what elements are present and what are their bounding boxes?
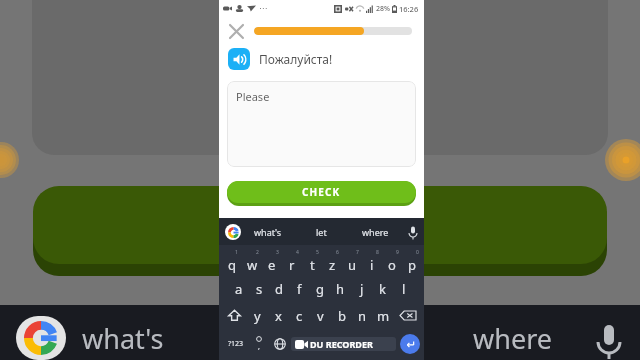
staticText: h: [336, 280, 345, 298]
staticText: what's: [254, 226, 282, 238]
button[interactable]: Google: [225, 224, 241, 240]
staticText: m: [377, 307, 390, 325]
staticText: y: [254, 307, 261, 325]
staticText: u: [348, 256, 357, 274]
staticText: CHECK: [302, 185, 341, 199]
staticText: x: [275, 307, 282, 325]
staticText: i: [370, 256, 374, 274]
button[interactable]: 4: [282, 248, 302, 275]
button[interactable]: Emoji: [249, 331, 269, 357]
staticText: 4: [296, 249, 299, 256]
button[interactable]: n: [352, 302, 373, 329]
staticText: g: [316, 280, 324, 298]
button[interactable]: Play audio: [228, 48, 250, 70]
button[interactable]: Close: [225, 20, 247, 42]
button[interactable]: 8: [362, 248, 382, 275]
staticText: t: [310, 256, 315, 274]
button[interactable]: 9: [382, 248, 402, 275]
staticText: s: [256, 280, 263, 298]
staticText: let: [316, 226, 327, 238]
button[interactable]: k: [372, 275, 393, 302]
staticText: f: [297, 280, 302, 298]
button[interactable]: ?123: [223, 331, 249, 357]
staticText: 16:26: [399, 4, 419, 14]
staticText: r: [289, 256, 295, 274]
staticText: 28%: [376, 4, 390, 14]
staticText: 5: [316, 249, 319, 256]
button[interactable]: 1: [221, 248, 242, 275]
staticText: 3: [276, 249, 279, 256]
staticText: 0: [416, 249, 419, 256]
staticText: k: [379, 280, 386, 298]
staticText: 7: [356, 249, 359, 256]
button[interactable]: where: [348, 218, 402, 245]
button[interactable]: m: [373, 302, 394, 329]
staticText: Пожалуйста!: [259, 51, 333, 67]
staticText: 6: [336, 249, 339, 256]
button[interactable]: 6: [322, 248, 342, 275]
button[interactable]: let: [294, 218, 348, 245]
staticText: ⋯: [259, 4, 267, 13]
button[interactable]: x: [268, 302, 289, 329]
staticText: v: [317, 307, 324, 325]
button[interactable]: g: [309, 275, 330, 302]
staticText: c: [296, 307, 303, 325]
button[interactable]: b: [331, 302, 352, 329]
button[interactable]: Voice input: [402, 218, 424, 245]
button[interactable]: Please: [227, 81, 416, 167]
staticText: z: [329, 256, 336, 274]
staticText: where: [362, 226, 389, 238]
button[interactable]: 2: [242, 248, 262, 275]
button[interactable]: j: [351, 275, 372, 302]
button[interactable]: Backspace: [394, 302, 422, 329]
staticText: w: [247, 256, 258, 274]
button[interactable]: d: [269, 275, 289, 302]
staticText: p: [408, 256, 416, 274]
button[interactable]: l: [393, 275, 414, 302]
button[interactable]: c: [289, 302, 310, 329]
staticText: 1: [235, 249, 238, 256]
staticText: DU RECORDER: [310, 338, 373, 350]
staticText: what's: [82, 320, 164, 357]
button[interactable]: Space: [291, 337, 396, 351]
staticText: ?123: [228, 339, 244, 349]
button[interactable]: Shift: [221, 302, 247, 329]
staticText: ,: [258, 342, 260, 352]
button[interactable]: CHECK: [227, 181, 416, 203]
staticText: j: [360, 280, 364, 298]
staticText: d: [275, 280, 283, 298]
staticText: 9: [396, 249, 399, 256]
staticText: n: [358, 307, 367, 325]
button[interactable]: what's: [241, 218, 294, 245]
staticText: e: [268, 256, 276, 274]
button[interactable]: y: [247, 302, 268, 329]
button[interactable]: s: [249, 275, 269, 302]
staticText: 8: [376, 249, 379, 256]
button[interactable]: 0: [402, 248, 422, 275]
staticText: o: [388, 256, 396, 274]
button[interactable]: v: [310, 302, 331, 329]
button[interactable]: h: [330, 275, 351, 302]
button[interactable]: f: [289, 275, 309, 302]
staticText: Please: [236, 89, 270, 104]
staticText: DEUTSCH: [330, 340, 357, 348]
staticText: 2: [256, 249, 259, 256]
button[interactable]: 5: [302, 248, 322, 275]
button[interactable]: a: [229, 275, 249, 302]
staticText: where: [473, 320, 552, 357]
staticText: a: [235, 280, 243, 298]
button[interactable]: 3: [262, 248, 282, 275]
button[interactable]: 7: [342, 248, 362, 275]
staticText: b: [338, 307, 346, 325]
button[interactable]: Change language: [269, 331, 291, 357]
staticText: q: [228, 256, 236, 274]
button[interactable]: Enter: [400, 334, 420, 354]
staticText: l: [402, 280, 406, 298]
